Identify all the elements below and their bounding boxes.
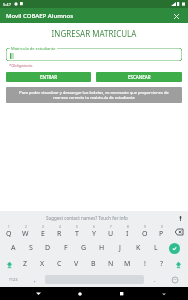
- button[interactable]: H: [93, 240, 111, 256]
- staticText: G: [81, 243, 87, 253]
- staticText: Y: [92, 229, 96, 239]
- staticText: B: [91, 259, 96, 269]
- staticText: 1: [8, 225, 10, 229]
- staticText: T: [75, 229, 79, 239]
- button[interactable]: X: [34, 256, 51, 272]
- button[interactable]: Atras: [30, 287, 46, 300]
- staticText: Z: [23, 259, 28, 269]
- button[interactable]: ,: [26, 272, 43, 287]
- staticText: ENTRAR: [40, 74, 58, 80]
- staticText: J: [119, 243, 121, 253]
- staticText: P: [159, 229, 164, 239]
- staticText: C: [57, 259, 62, 269]
- button[interactable]: B: [85, 256, 102, 272]
- staticText: 0: [161, 225, 163, 229]
- button[interactable]: 2: [17, 224, 34, 240]
- button[interactable]: M: [119, 256, 136, 272]
- button[interactable]: Mayusculas: [1, 256, 17, 272]
- staticText: R: [57, 229, 62, 239]
- button[interactable]: 6: [85, 224, 102, 240]
- staticText: A: [11, 243, 16, 253]
- staticText: Matricula de estudiante: [11, 46, 56, 51]
- button[interactable]: S: [22, 240, 39, 256]
- button[interactable]: Suggest contact names? Touch for info: [0, 211, 188, 224]
- button[interactable]: A: [5, 240, 22, 256]
- staticText: X: [40, 259, 45, 269]
- button[interactable]: 7: [102, 224, 119, 240]
- button[interactable]: Aceptar: [165, 240, 183, 256]
- staticText: *Obligatorio: [9, 63, 33, 68]
- staticText: Para poder visualizar y descargar tus bo…: [12, 90, 176, 100]
- staticText: ?: [160, 259, 164, 269]
- staticText: M: [124, 259, 131, 269]
- button[interactable]: 3: [34, 224, 51, 240]
- button[interactable]: D: [39, 240, 57, 256]
- button[interactable]: 4: [51, 224, 68, 240]
- button[interactable]: Cerrar: [170, 10, 182, 22]
- staticText: 7: [110, 225, 112, 229]
- button[interactable]: Matricula de estudiante: [6, 46, 182, 61]
- button[interactable]: C: [51, 256, 68, 272]
- staticText: 5:47: [3, 2, 11, 7]
- staticText: ESCANEAR: [128, 74, 151, 80]
- button[interactable]: 1: [1, 224, 17, 240]
- staticText: W: [22, 229, 29, 239]
- button[interactable]: G: [75, 240, 93, 256]
- staticText: 2: [25, 225, 27, 229]
- button[interactable]: V: [68, 256, 85, 272]
- staticText: !: [144, 259, 146, 269]
- button[interactable]: Emoji: [163, 272, 187, 287]
- staticText: 6: [93, 225, 95, 229]
- button[interactable]: ?123: [1, 272, 26, 287]
- button[interactable]: L: [147, 240, 165, 256]
- staticText: I: [126, 229, 129, 239]
- button[interactable]: .: [146, 272, 163, 287]
- staticText: 8: [127, 225, 129, 229]
- button[interactable]: N: [102, 256, 119, 272]
- button[interactable]: J: [111, 240, 129, 256]
- staticText: U: [108, 229, 114, 239]
- button[interactable]: Recientes: [114, 287, 130, 300]
- staticText: N: [108, 259, 114, 269]
- staticText: O: [142, 229, 148, 239]
- staticText: L: [154, 243, 158, 253]
- button[interactable]: !: [136, 256, 153, 272]
- button[interactable]: ESCANEAR: [96, 72, 182, 82]
- staticText: 3: [42, 225, 44, 229]
- button[interactable]: ?: [153, 256, 170, 272]
- staticText: Movil COBAEP Alumnos: [6, 12, 74, 20]
- staticText: Suggest contact names? Touch for info: [46, 215, 128, 221]
- button[interactable]: Z: [17, 256, 34, 272]
- button[interactable]: ENTRAR: [6, 72, 91, 82]
- staticText: 5: [76, 225, 78, 229]
- staticText: K: [136, 243, 141, 253]
- button[interactable]: Ocultar teclado: [156, 287, 172, 300]
- button[interactable]: 0: [153, 224, 170, 240]
- staticText: E: [41, 229, 45, 239]
- button[interactable]: Voz: [175, 213, 185, 223]
- button[interactable]: 9: [136, 224, 153, 240]
- button[interactable]: 8: [119, 224, 136, 240]
- staticText: .: [154, 276, 156, 284]
- staticText: ?123: [9, 277, 18, 282]
- button[interactable]: F: [57, 240, 75, 256]
- staticText: ,: [34, 276, 36, 284]
- staticText: F: [64, 243, 68, 253]
- button[interactable]: Inicio: [72, 287, 88, 300]
- staticText: S: [29, 243, 33, 253]
- staticText: V: [74, 259, 79, 269]
- staticText: 9: [144, 225, 146, 229]
- button[interactable]: Mayusculas: [170, 256, 187, 272]
- staticText: 4: [59, 225, 61, 229]
- staticText: Q: [6, 229, 12, 239]
- staticText: INGRESAR MATRICULA: [0, 28, 188, 39]
- button[interactable]: Borrar: [170, 224, 187, 240]
- button[interactable]: 5: [68, 224, 85, 240]
- staticText: D: [45, 243, 51, 253]
- staticText: H: [99, 243, 105, 253]
- button[interactable]: K: [129, 240, 147, 256]
